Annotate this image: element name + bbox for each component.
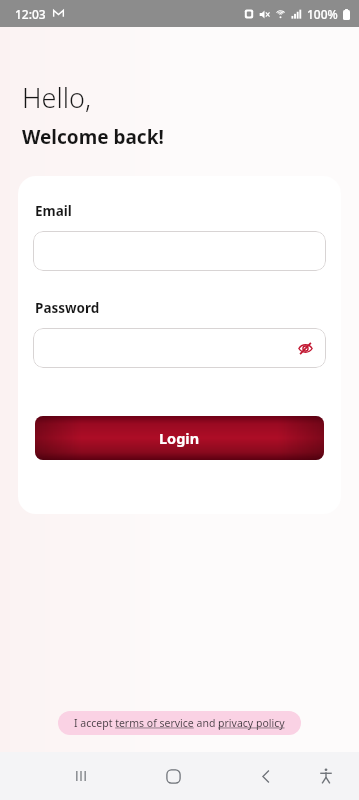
staticText: Login <box>159 428 200 448</box>
button[interactable]: Home <box>150 753 196 799</box>
staticText: Welcome back! <box>22 124 164 150</box>
button[interactable]: I accept terms of service and privacy po… <box>58 711 301 735</box>
button[interactable]: Accessibility <box>303 753 349 799</box>
button[interactable]: Back <box>243 753 289 799</box>
button[interactable]: Show password <box>33 328 326 368</box>
staticText: Email <box>35 202 72 220</box>
button[interactable]: Login <box>35 416 324 460</box>
staticText: 12:03 <box>15 6 46 22</box>
staticText: I accept terms of service and privacy po… <box>74 716 285 730</box>
staticText: Hello, <box>22 79 91 116</box>
button[interactable] <box>33 231 326 271</box>
staticText: Password <box>35 299 100 317</box>
button[interactable]: Show password <box>294 337 316 359</box>
button[interactable]: Recent apps <box>58 753 104 799</box>
staticText: 100% <box>307 6 338 22</box>
